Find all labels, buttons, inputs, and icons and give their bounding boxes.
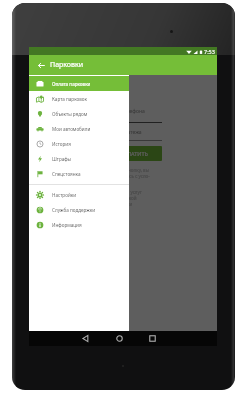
button[interactable]: Recents (146, 332, 159, 345)
button[interactable]: Объекты рядом (29, 106, 129, 121)
staticText: Объекты рядом (52, 111, 88, 117)
button[interactable]: История (29, 136, 129, 151)
button[interactable]: Оплата парковки (29, 76, 129, 91)
button[interactable]: Штрафы (29, 151, 129, 166)
staticText: Мои автомобили (52, 126, 91, 132)
button[interactable]: Мои автомобили (29, 121, 129, 136)
staticText: История (52, 141, 71, 147)
button[interactable]: Информация (29, 217, 129, 232)
button[interactable]: ОПЛАТИТЬ (104, 146, 162, 161)
staticText: Оплата парковки (52, 81, 91, 87)
staticText: Парковки (50, 60, 84, 70)
staticText: Карта парковок (52, 96, 87, 102)
staticText: Сумма платежа (104, 129, 142, 136)
staticText: оказания услуг и политикой обработки (109, 189, 142, 207)
button[interactable]: Back (79, 332, 92, 345)
staticText: Номер телефона (104, 108, 145, 115)
button[interactable]: Спецстоянка (29, 166, 129, 181)
staticText: ОПЛАТИТЬ (119, 150, 148, 157)
staticText: 7:53 (204, 48, 215, 55)
button[interactable]: Карта парковок (29, 91, 129, 106)
staticText: Штрафы (52, 156, 72, 162)
button[interactable]: Back (36, 60, 47, 71)
button[interactable]: Служба поддержки (29, 202, 129, 217)
button[interactable]: Настройки (29, 187, 129, 202)
button[interactable]: Home (113, 332, 126, 345)
staticText: Информация (52, 222, 82, 228)
staticText: Настройки (52, 192, 77, 198)
staticText: Спецстоянка (52, 171, 81, 177)
staticText: Служба поддержки (52, 207, 96, 213)
staticText: Нажимая кнопку, вы соглашаетесь с усло- … (104, 167, 150, 185)
